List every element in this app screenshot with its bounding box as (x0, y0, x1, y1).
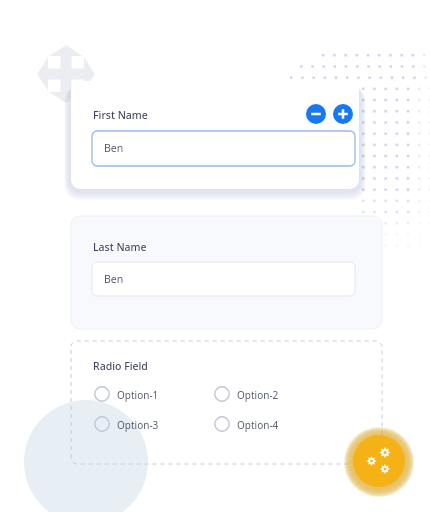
button[interactable]: First Name input (92, 131, 355, 166)
button[interactable] (213, 415, 313, 434)
button[interactable]: Remove field (306, 104, 326, 124)
button[interactable] (93, 385, 193, 404)
button[interactable]: Move (40, 48, 92, 100)
button[interactable]: Settings (353, 435, 405, 487)
button[interactable]: Last Name input (92, 262, 355, 296)
button[interactable] (93, 415, 193, 434)
button[interactable] (213, 385, 313, 404)
button[interactable]: Add field (333, 104, 353, 124)
